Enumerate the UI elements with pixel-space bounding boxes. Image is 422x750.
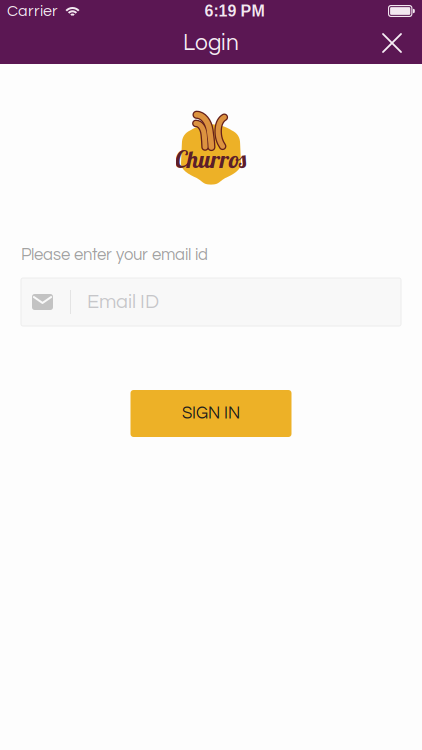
staticText: Email ID [87, 292, 159, 312]
staticText: 6:19 PM [204, 2, 264, 20]
button[interactable]: Email ID [0, 278, 422, 326]
staticText: Login [183, 31, 239, 55]
button[interactable]: SIGN IN [130, 390, 291, 437]
staticText: Churros [174, 144, 247, 174]
staticText: Carrier [7, 3, 58, 19]
staticText: Please enter your email id [21, 246, 208, 264]
staticText: SIGN IN [182, 405, 240, 422]
button[interactable]: Close [369, 23, 422, 63]
